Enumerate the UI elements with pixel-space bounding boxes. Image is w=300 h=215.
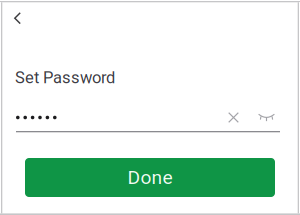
button[interactable]: Done	[25, 158, 275, 197]
button[interactable]: Show password	[253, 107, 280, 128]
staticText: Set Password	[15, 68, 115, 87]
button[interactable]: Back	[0, 0, 35, 36]
button[interactable]: Clear	[223, 107, 244, 128]
staticText: Done	[127, 166, 172, 189]
